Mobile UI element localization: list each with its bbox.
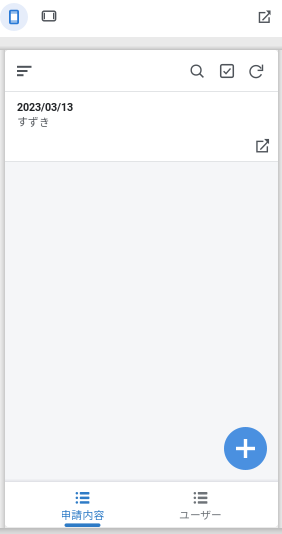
button[interactable]: ユーザー bbox=[141, 482, 259, 527]
button[interactable]: Phone preview bbox=[0, 3, 28, 31]
button[interactable]: Open detail bbox=[252, 134, 274, 156]
button[interactable]: Refresh bbox=[242, 56, 272, 86]
staticText: すずき bbox=[17, 113, 50, 129]
button[interactable]: Tablet preview bbox=[35, 2, 63, 30]
button[interactable]: Sort bbox=[5, 56, 47, 86]
staticText: ユーザー bbox=[179, 507, 222, 522]
button[interactable]: 2023/03/13 bbox=[5, 92, 278, 162]
button[interactable]: 申請内容 bbox=[23, 482, 141, 527]
button[interactable]: Add bbox=[224, 427, 267, 470]
button[interactable]: Search bbox=[182, 56, 212, 86]
button[interactable]: Select bbox=[212, 56, 242, 86]
staticText: 2023/03/13 bbox=[17, 101, 73, 113]
staticText: 申請内容 bbox=[60, 507, 104, 522]
button[interactable]: Open in new window bbox=[251, 2, 279, 30]
